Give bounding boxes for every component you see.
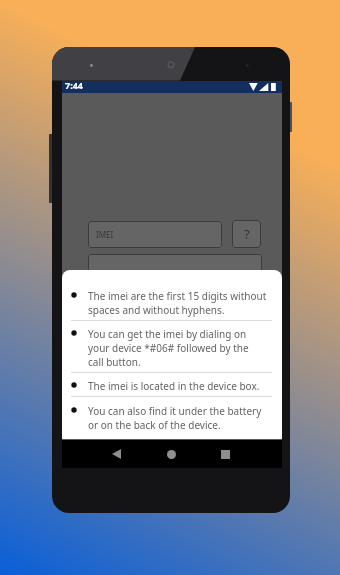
- button[interactable]: [62, 397, 282, 439]
- button[interactable]: Recent apps: [207, 440, 243, 468]
- button[interactable]: [62, 373, 282, 396]
- staticText: spaces and without hyphens.: [88, 303, 225, 317]
- button[interactable]: Back: [98, 440, 134, 468]
- button[interactable]: [88, 254, 262, 282]
- button[interactable]: [62, 270, 282, 320]
- staticText: IMEI: [96, 229, 114, 240]
- staticText: The imei is located in the device box.: [88, 379, 260, 393]
- button[interactable]: IMEI: [88, 221, 222, 248]
- staticText: You can also find it under the battery: [88, 404, 262, 418]
- staticText: The imei are the first 15 digits without: [88, 289, 267, 303]
- staticText: ?: [244, 225, 250, 243]
- staticText: your device *#06# followed by the: [88, 341, 249, 355]
- button[interactable]: Home: [153, 440, 189, 468]
- staticText: You can get the imei by dialing on: [88, 327, 247, 341]
- staticText: call button.: [88, 355, 141, 369]
- staticText: 7:44: [65, 79, 83, 91]
- staticText: or on the back of the device.: [88, 418, 221, 432]
- button[interactable]: [62, 321, 282, 372]
- button[interactable]: Help: [232, 220, 261, 248]
